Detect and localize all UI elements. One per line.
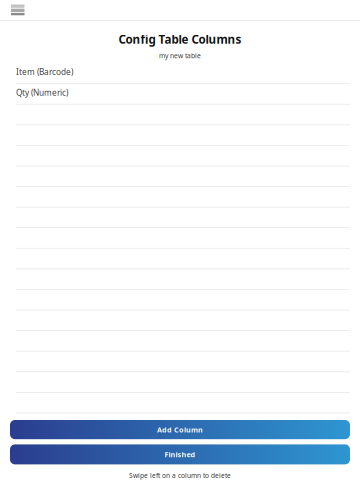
button[interactable]: Qty (Numeric) bbox=[0, 84, 360, 105]
staticText: Swipe left on a column to delete bbox=[129, 471, 231, 480]
button[interactable] bbox=[0, 228, 360, 249]
button[interactable]: Item (Barcode) bbox=[0, 63, 360, 84]
staticText: Add Column bbox=[157, 425, 203, 434]
button[interactable]: Add Column bbox=[10, 420, 350, 439]
button[interactable]: Menu bbox=[0, 0, 32, 20]
button[interactable] bbox=[0, 207, 360, 228]
button[interactable] bbox=[0, 310, 360, 331]
staticText: my new table bbox=[159, 51, 201, 60]
staticText: Finished bbox=[164, 449, 195, 459]
button[interactable] bbox=[0, 331, 360, 352]
button[interactable]: Finished bbox=[10, 444, 350, 464]
staticText: Qty (Numeric) bbox=[16, 87, 68, 98]
staticText: Config Table Columns bbox=[118, 31, 241, 47]
button[interactable] bbox=[0, 125, 360, 146]
button[interactable] bbox=[0, 372, 360, 393]
button[interactable] bbox=[0, 269, 360, 290]
button[interactable] bbox=[0, 166, 360, 187]
staticText: Item (Barcode) bbox=[16, 66, 73, 77]
